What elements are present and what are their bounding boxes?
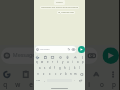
button[interactable]: t	[55, 59, 60, 65]
button[interactable]: l	[77, 65, 82, 71]
button[interactable]: y	[60, 59, 65, 65]
button[interactable]: Keyboard tool 6	[107, 69, 117, 78]
staticText: b	[65, 72, 67, 76]
button[interactable]: Message	[1, 47, 98, 64]
button[interactable]: Send	[102, 47, 119, 64]
button[interactable]: ?123	[35, 77, 42, 83]
button[interactable]: w	[40, 59, 45, 65]
button[interactable]: h	[62, 65, 67, 71]
staticText: x	[49, 72, 51, 76]
staticText: p	[112, 80, 117, 90]
staticText: u	[76, 80, 81, 90]
staticText: q	[36, 60, 38, 64]
button[interactable]: Keyboard tool 4	[65, 55, 69, 59]
staticText: s	[44, 66, 46, 70]
button[interactable]: w	[13, 78, 25, 90]
staticText: r	[52, 60, 54, 64]
button[interactable]: m	[73, 71, 78, 77]
staticText: m	[74, 72, 77, 76]
staticText: w	[15, 80, 22, 90]
button[interactable]: Keyboard tool 5	[91, 69, 100, 78]
button[interactable]: s	[42, 65, 47, 71]
button[interactable]: Backspace	[78, 71, 84, 77]
button[interactable]: e	[45, 59, 50, 65]
button[interactable]: Shift	[35, 71, 41, 77]
staticText: v	[60, 72, 62, 76]
button[interactable]: y	[60, 78, 72, 90]
button[interactable]: g	[57, 65, 62, 71]
staticText: q	[3, 80, 8, 90]
staticText: w	[41, 60, 44, 64]
staticText: l	[79, 66, 80, 70]
staticText: p	[82, 60, 84, 64]
staticText: n	[70, 72, 72, 76]
staticText: ,	[44, 78, 45, 82]
staticText: o	[77, 60, 79, 64]
button[interactable]: Keyboard tool 4	[72, 69, 81, 78]
button[interactable]: Keyboard tool 1	[20, 69, 29, 78]
button[interactable]: i	[84, 78, 95, 90]
staticText: h	[64, 66, 66, 70]
button[interactable]: p	[107, 78, 119, 90]
staticText: Messages are end-to-end encrypted	[41, 6, 78, 9]
button[interactable]: x	[47, 71, 53, 77]
staticText: t	[53, 80, 55, 90]
button[interactable]: t	[48, 78, 60, 90]
button[interactable]: k	[72, 65, 77, 71]
button[interactable]: Keyboard tool 2	[36, 69, 46, 78]
button[interactable]: r	[36, 78, 48, 90]
button[interactable]: n	[68, 71, 73, 77]
button[interactable]: Keyboard tool 0	[35, 55, 39, 59]
button[interactable]: i	[70, 59, 75, 65]
button[interactable]: o	[75, 59, 80, 65]
button[interactable]: v	[58, 71, 63, 77]
button[interactable]: q	[0, 78, 13, 90]
staticText: j	[69, 66, 70, 70]
staticText: r	[41, 80, 46, 90]
button[interactable]: Enter	[77, 77, 84, 83]
button[interactable]: q	[34, 59, 40, 65]
button[interactable]: Keyboard tool 0	[1, 69, 10, 78]
button[interactable]: z	[41, 71, 47, 77]
button[interactable]: Message	[35, 46, 76, 53]
staticText: TODAY	[56, 1, 63, 4]
button[interactable]: Keyboard tool 6	[80, 55, 84, 59]
button[interactable]: Keyboard tool 3	[55, 69, 65, 78]
button[interactable]: a	[37, 65, 42, 71]
staticText: g	[59, 66, 61, 70]
button[interactable]: ,	[42, 77, 47, 83]
staticText: y	[65, 80, 69, 90]
staticText: d	[49, 66, 51, 70]
button[interactable]: o	[95, 78, 107, 90]
button[interactable]: Send	[78, 46, 85, 53]
button[interactable]: Keyboard tool 3	[58, 55, 62, 59]
button[interactable]: e	[25, 78, 36, 90]
button[interactable]: Keyboard tool 1	[43, 55, 47, 59]
button[interactable]: r	[50, 59, 55, 65]
button[interactable]: Keyboard tool 5	[73, 55, 77, 59]
button[interactable]: Keyboard tool 2	[50, 55, 54, 59]
staticText: e	[47, 60, 49, 64]
staticText: c	[55, 72, 57, 76]
button[interactable]: p	[80, 59, 85, 65]
staticText: k	[74, 66, 76, 70]
staticText: ?123	[36, 79, 41, 82]
button[interactable]: u	[65, 59, 70, 65]
button[interactable]: c	[53, 71, 58, 77]
staticText: t	[57, 60, 58, 64]
button[interactable]: u	[72, 78, 84, 90]
staticText: y	[62, 60, 64, 64]
button[interactable]: j	[67, 65, 72, 71]
staticText: u	[67, 60, 69, 64]
button[interactable]: Hi, how are you	[58, 11, 74, 14]
staticText: Message	[13, 52, 36, 59]
button[interactable]: f	[52, 65, 57, 71]
button[interactable]: d	[47, 65, 52, 71]
staticText: a	[39, 66, 41, 70]
staticText: o	[100, 80, 105, 90]
button[interactable]: b	[63, 71, 68, 77]
staticText: Message	[40, 48, 50, 51]
staticText: f	[54, 66, 55, 70]
